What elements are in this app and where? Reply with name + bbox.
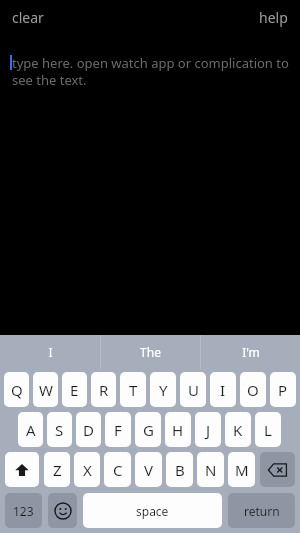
button[interactable]: Q bbox=[4, 372, 29, 407]
staticText: J bbox=[206, 420, 211, 440]
staticText: G bbox=[143, 420, 154, 440]
staticText: clear bbox=[12, 8, 44, 27]
button[interactable]: N bbox=[197, 452, 224, 487]
staticText: Z bbox=[53, 460, 62, 480]
staticText: Q bbox=[11, 380, 23, 400]
button[interactable]: P bbox=[270, 372, 296, 407]
button[interactable]: R bbox=[91, 372, 116, 407]
button[interactable]: 123 bbox=[5, 493, 42, 528]
button[interactable]: D bbox=[76, 412, 101, 447]
button[interactable]: Shift bbox=[5, 452, 39, 487]
button[interactable]: T bbox=[120, 372, 146, 407]
staticText: space bbox=[136, 503, 169, 519]
staticText: A bbox=[26, 420, 36, 440]
button[interactable]: I bbox=[210, 372, 236, 407]
staticText: help bbox=[259, 8, 288, 27]
staticText: L bbox=[264, 420, 272, 440]
staticText: C bbox=[113, 460, 123, 480]
button[interactable]: I bbox=[0, 335, 100, 369]
staticText: U bbox=[188, 380, 199, 400]
staticText: I'm bbox=[242, 344, 260, 360]
button[interactable]: M bbox=[228, 452, 255, 487]
button[interactable]: G bbox=[135, 412, 161, 447]
button[interactable]: clear bbox=[0, 4, 56, 31]
button[interactable]: space bbox=[83, 493, 222, 528]
staticText: The bbox=[140, 344, 161, 360]
button[interactable]: C bbox=[104, 452, 131, 487]
button[interactable]: A bbox=[18, 412, 43, 447]
staticText: V bbox=[144, 460, 154, 480]
button[interactable]: E bbox=[62, 372, 87, 407]
staticText: 123 bbox=[13, 503, 34, 519]
staticText: S bbox=[55, 420, 64, 440]
button[interactable]: return bbox=[228, 493, 295, 528]
staticText: M bbox=[235, 460, 249, 480]
staticText: I bbox=[48, 344, 53, 360]
button[interactable]: type here. open watch app or complicatio… bbox=[0, 34, 300, 335]
button[interactable]: Backspace bbox=[260, 452, 295, 487]
button[interactable]: Emoji bbox=[48, 493, 77, 528]
staticText: W bbox=[39, 380, 53, 400]
staticText: K bbox=[233, 420, 243, 440]
staticText: F bbox=[114, 420, 122, 440]
button[interactable]: F bbox=[105, 412, 131, 447]
button[interactable]: help bbox=[247, 4, 300, 31]
button[interactable]: U bbox=[180, 372, 206, 407]
staticText: I bbox=[220, 380, 226, 400]
staticText: N bbox=[205, 460, 217, 480]
staticText: O bbox=[247, 380, 259, 400]
button[interactable]: The bbox=[101, 335, 200, 369]
button[interactable]: O bbox=[240, 372, 266, 407]
staticText: R bbox=[99, 380, 109, 400]
staticText: P bbox=[278, 380, 288, 400]
button[interactable]: V bbox=[135, 452, 162, 487]
staticText: T bbox=[129, 380, 138, 400]
button[interactable]: Z bbox=[44, 452, 70, 487]
staticText: E bbox=[70, 380, 79, 400]
button[interactable]: W bbox=[33, 372, 58, 407]
button[interactable]: S bbox=[47, 412, 72, 447]
staticText: Y bbox=[159, 380, 168, 400]
staticText: type here. open watch app or complicatio… bbox=[12, 54, 292, 89]
button[interactable]: L bbox=[255, 412, 281, 447]
staticText: return bbox=[244, 503, 280, 519]
staticText: B bbox=[175, 460, 185, 480]
button[interactable]: K bbox=[225, 412, 251, 447]
button[interactable]: I'm bbox=[201, 335, 300, 369]
staticText: X bbox=[83, 460, 92, 480]
button[interactable]: X bbox=[74, 452, 100, 487]
staticText: H bbox=[172, 420, 184, 440]
button[interactable]: Y bbox=[150, 372, 176, 407]
button[interactable]: B bbox=[166, 452, 193, 487]
button[interactable]: H bbox=[165, 412, 191, 447]
button[interactable]: J bbox=[195, 412, 221, 447]
staticText: D bbox=[83, 420, 94, 440]
